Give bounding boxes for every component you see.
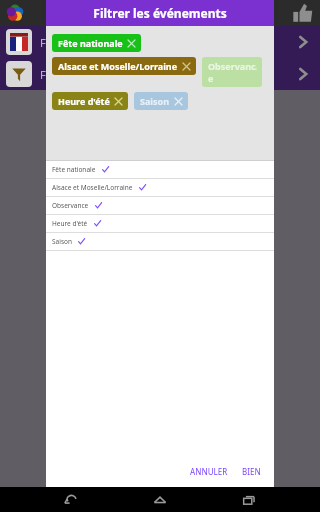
- other: Like: [292, 2, 314, 24]
- staticText: Saison: [140, 95, 170, 107]
- staticText: Alsace et Moselle/Lorraine: [58, 60, 178, 72]
- staticText: BIEN: [242, 466, 261, 477]
- button[interactable]: Alsace et Moselle/Lorraine: [46, 179, 274, 197]
- button[interactable]: ANNULER: [185, 463, 233, 480]
- button[interactable]: Heure d'été: [52, 92, 128, 110]
- staticText: Observance: [208, 60, 256, 84]
- staticText: Heure d'été: [52, 219, 88, 228]
- staticText: Alsace et Moselle/Lorraine: [52, 183, 133, 192]
- button[interactable]: Filtres: [0, 58, 320, 90]
- button[interactable]: France: [0, 26, 320, 58]
- button[interactable]: Recent apps: [231, 487, 267, 512]
- button[interactable]: Fête nationale: [52, 34, 141, 52]
- button[interactable]: Saison: [46, 233, 274, 251]
- button[interactable]: Fête nationale: [46, 161, 274, 179]
- staticText: ANNULER: [190, 466, 228, 477]
- staticText: Observance: [52, 201, 89, 210]
- staticText: France: [40, 35, 294, 50]
- button[interactable]: Back: [53, 487, 89, 512]
- button[interactable]: Home: [142, 487, 178, 512]
- button[interactable]: Alsace et Moselle/Lorraine: [52, 57, 196, 75]
- staticText: Heure d'été: [58, 95, 110, 107]
- staticText: Fête nationale: [58, 37, 123, 49]
- staticText: Filtres: [40, 67, 294, 82]
- button[interactable]: Observance: [46, 197, 274, 215]
- staticText: Saison: [52, 237, 72, 246]
- staticText: Filtrer les événements: [93, 5, 227, 21]
- staticText: Fête nationale: [52, 165, 96, 174]
- button[interactable]: Observance: [202, 57, 262, 87]
- button[interactable]: Saison: [134, 92, 188, 110]
- other: Open: [294, 65, 312, 83]
- other: App logo: [4, 2, 26, 24]
- button[interactable]: Heure d'été: [46, 215, 274, 233]
- other: Open: [294, 33, 312, 51]
- button[interactable]: BIEN: [237, 463, 266, 480]
